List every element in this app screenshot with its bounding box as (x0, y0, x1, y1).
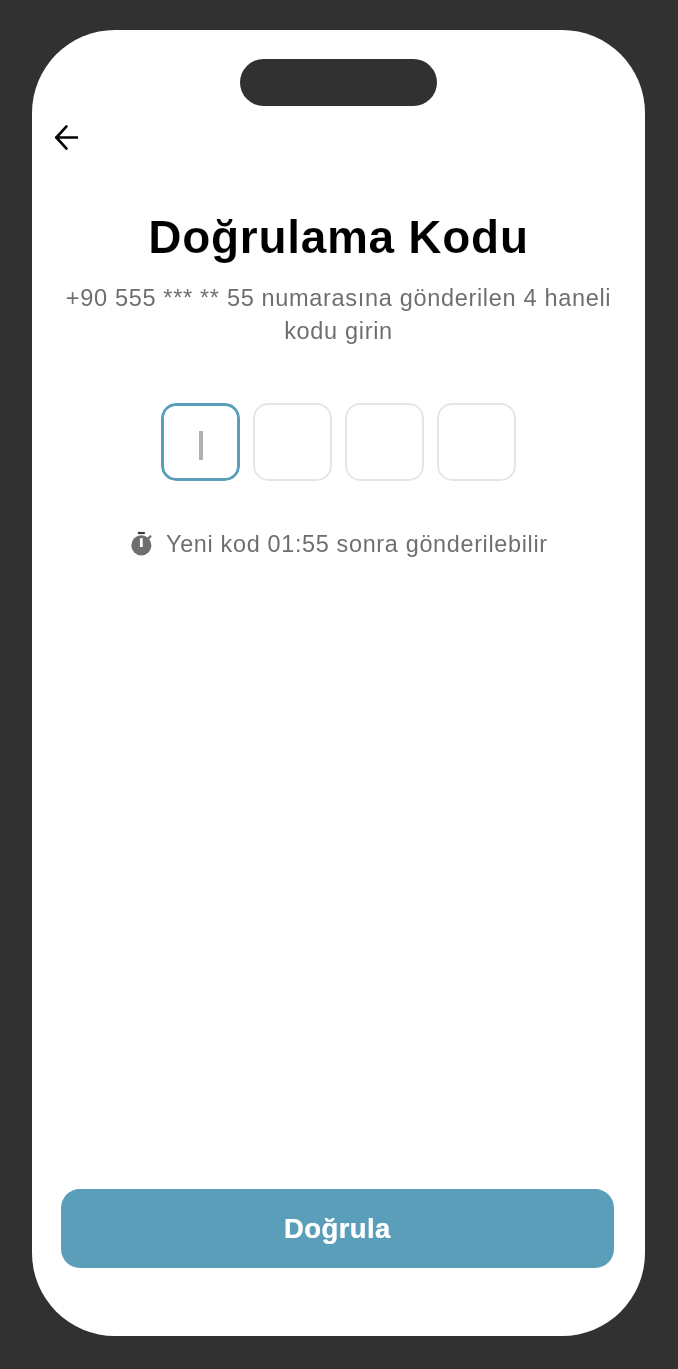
button[interactable] (161, 403, 240, 481)
staticText: Doğrula (284, 1213, 391, 1244)
staticText: Yeni kod 01:55 sonra gönderilebilir (166, 531, 548, 557)
button[interactable]: Doğrula (61, 1189, 614, 1268)
button[interactable] (437, 403, 516, 481)
staticText: Doğrulama Kodu (32, 211, 645, 262)
button[interactable] (345, 403, 424, 481)
staticText: +90 555 *** ** 55 numarasına gönderilen … (60, 285, 617, 344)
button[interactable]: Yeni kod 01:55 sonra gönderilebilir (32, 523, 645, 563)
button[interactable] (253, 403, 332, 481)
button[interactable]: Back (44, 115, 88, 159)
